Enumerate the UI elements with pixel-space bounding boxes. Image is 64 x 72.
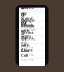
staticText: Sprint Planning xyxy=(21,30,34,46)
staticText: 9:00 AM xyxy=(21,26,33,30)
staticText: Today xyxy=(21,0,27,25)
button[interactable]: 1:1 with Alex xyxy=(19,43,45,51)
button[interactable]: Design Review xyxy=(19,21,45,29)
staticText: 4:45 PM xyxy=(21,58,33,61)
staticText: 1:1 with Alex xyxy=(21,37,30,53)
button[interactable]: Client Call xyxy=(19,51,45,58)
staticText: Morning Stand-up xyxy=(21,5,34,26)
staticText: 10:30 AM xyxy=(21,28,35,32)
staticText: 2:00 PM xyxy=(21,46,33,49)
staticText: Lunch with Team xyxy=(21,22,34,38)
staticText: Client Call xyxy=(21,47,33,58)
staticText: 3:30 PM xyxy=(21,53,33,57)
staticText: Design Review xyxy=(21,18,35,28)
button[interactable]: Morning Stand-up xyxy=(19,14,45,21)
button[interactable]: Lunch with Team xyxy=(19,29,45,36)
staticText: 12:00 PM xyxy=(21,38,35,42)
button[interactable]: Sprint Planning xyxy=(19,36,45,43)
